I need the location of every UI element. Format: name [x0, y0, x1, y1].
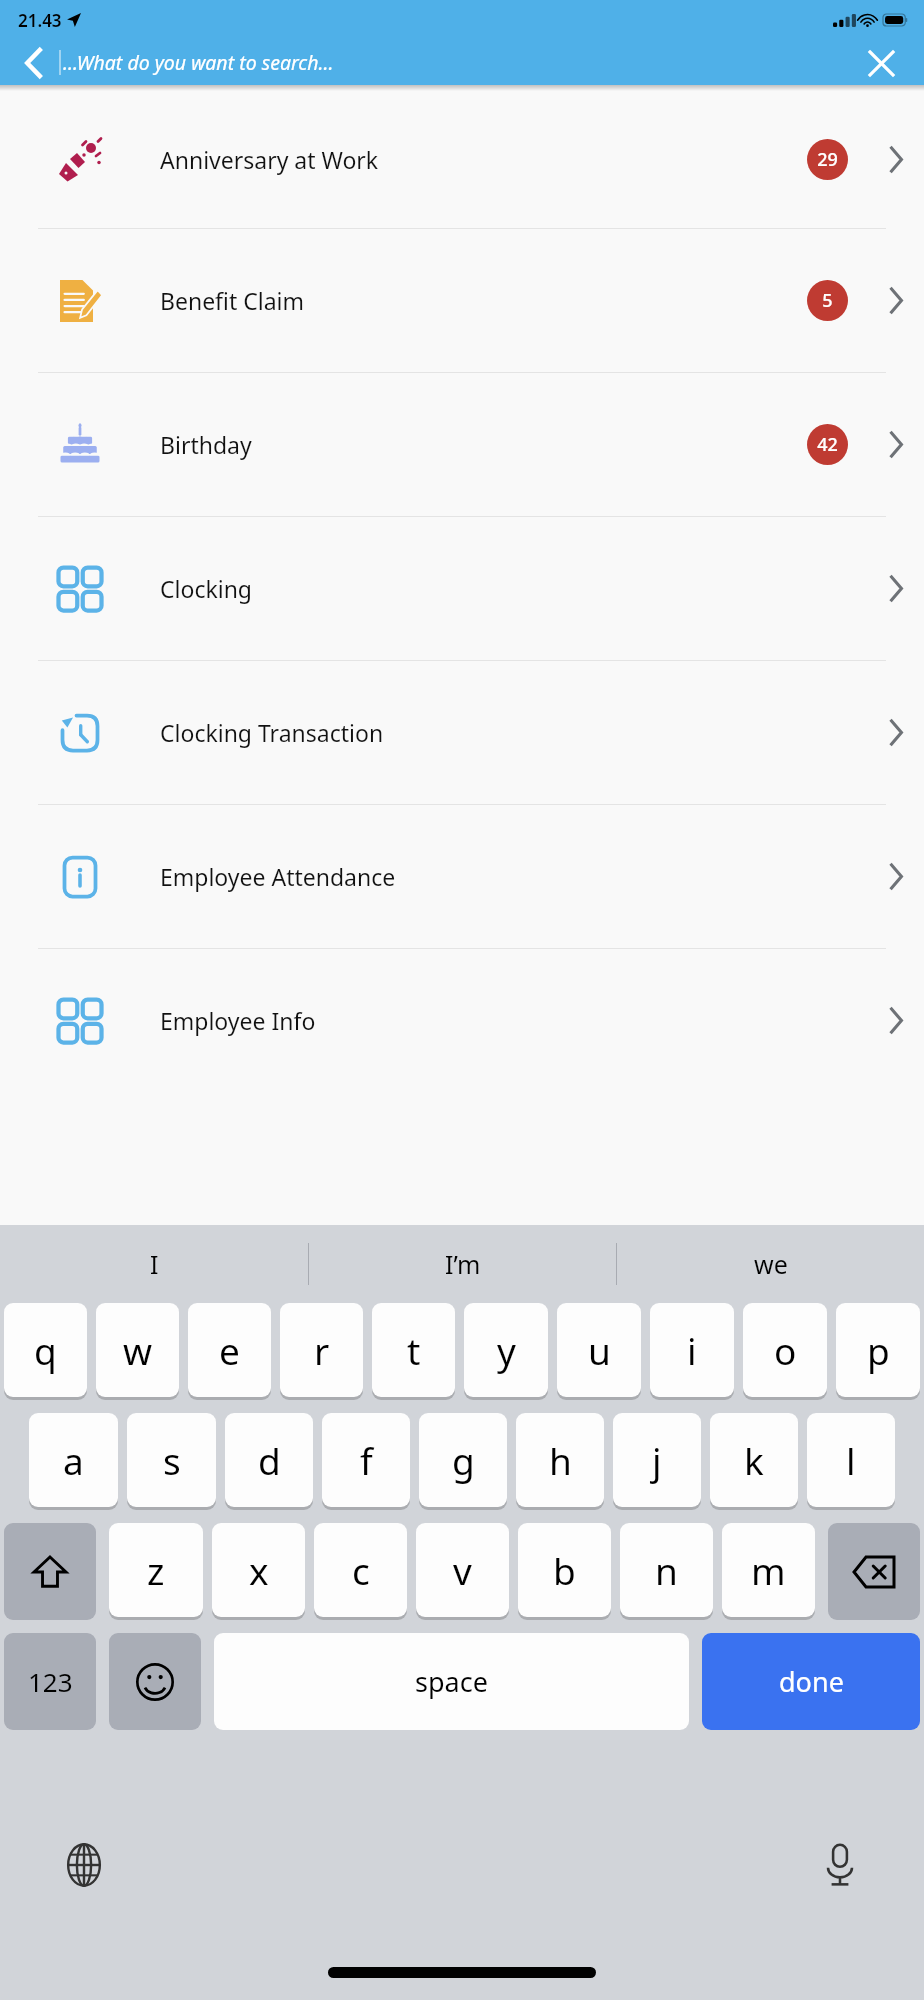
staticText: p — [867, 1325, 890, 1375]
button[interactable]: d — [225, 1413, 313, 1507]
staticText: e — [219, 1325, 240, 1375]
staticText: 29 — [817, 147, 838, 172]
staticText: a — [63, 1435, 84, 1485]
button[interactable]: Emoji — [109, 1633, 201, 1730]
staticText: j — [652, 1435, 662, 1485]
staticText: Employee Attendance — [160, 861, 396, 892]
button[interactable]: e — [188, 1303, 271, 1397]
button[interactable]: r — [280, 1303, 363, 1397]
button[interactable]: done — [702, 1633, 920, 1730]
button[interactable]: h — [516, 1413, 604, 1507]
staticText: d — [258, 1435, 281, 1485]
staticText: l — [846, 1435, 856, 1485]
staticText: o — [774, 1325, 797, 1375]
button[interactable]: Birthday — [0, 373, 924, 516]
staticText: 21.43 — [18, 9, 62, 32]
button[interactable]: t — [372, 1303, 455, 1397]
staticText: s — [163, 1435, 181, 1485]
staticText: k — [744, 1435, 764, 1485]
button[interactable]: s — [127, 1413, 216, 1507]
button[interactable]: Backspace — [828, 1523, 920, 1620]
staticText: v — [453, 1545, 472, 1595]
button[interactable]: f — [322, 1413, 410, 1507]
staticText: t — [407, 1325, 421, 1375]
staticText: r — [314, 1325, 330, 1375]
staticText: 42 — [817, 432, 838, 457]
staticText: n — [655, 1545, 678, 1595]
button[interactable]: o — [743, 1303, 827, 1397]
button[interactable]: x — [212, 1523, 305, 1617]
button[interactable]: Benefit Claim — [0, 229, 924, 372]
button[interactable]: Back — [10, 40, 56, 85]
button[interactable]: m — [722, 1523, 815, 1617]
staticText: 5 — [822, 288, 833, 313]
staticText: x — [249, 1545, 269, 1595]
button[interactable]: Shift — [4, 1523, 96, 1620]
staticText: z — [147, 1545, 165, 1595]
staticText: I — [150, 1247, 159, 1281]
button[interactable]: Anniversary at Work — [0, 91, 924, 228]
staticText: Clocking Transaction — [160, 717, 384, 748]
staticText: 123 — [28, 1664, 73, 1699]
button[interactable]: Clear search — [860, 42, 902, 84]
staticText: Birthday — [160, 429, 252, 460]
staticText: space — [415, 1663, 488, 1700]
button[interactable]: Clocking Transaction — [0, 661, 924, 804]
staticText: m — [751, 1545, 786, 1595]
button[interactable]: g — [419, 1413, 507, 1507]
button[interactable]: v — [416, 1523, 509, 1617]
staticText: y — [497, 1325, 516, 1375]
button[interactable]: w — [96, 1303, 179, 1397]
staticText: g — [452, 1435, 475, 1485]
button[interactable]: j — [613, 1413, 701, 1507]
button[interactable]: Change keyboard language — [56, 1837, 112, 1893]
staticText: h — [549, 1435, 572, 1485]
staticText: Employee Info — [160, 1005, 316, 1036]
button[interactable]: c — [314, 1523, 407, 1617]
button[interactable]: i — [650, 1303, 734, 1397]
button[interactable]: Employee Attendance — [0, 805, 924, 948]
staticText: b — [553, 1545, 576, 1595]
staticText: c — [352, 1545, 370, 1595]
staticText: Clocking — [160, 573, 253, 604]
button[interactable]: space — [214, 1633, 689, 1730]
staticText: u — [588, 1325, 611, 1375]
button[interactable]: z — [109, 1523, 203, 1617]
staticText: we — [754, 1247, 788, 1281]
button[interactable]: I — [0, 1225, 308, 1303]
staticText: Anniversary at Work — [160, 144, 379, 175]
button[interactable]: I’m — [309, 1225, 616, 1303]
button[interactable]: n — [620, 1523, 713, 1617]
button[interactable]: p — [836, 1303, 920, 1397]
staticText: i — [687, 1325, 697, 1375]
button[interactable]: Employee Info — [0, 949, 924, 1092]
button[interactable]: Voice input — [812, 1837, 868, 1893]
staticText: Benefit Claim — [160, 285, 305, 316]
button[interactable]: a — [29, 1413, 118, 1507]
button[interactable]: q — [4, 1303, 87, 1397]
staticText: f — [360, 1435, 373, 1485]
button[interactable]: b — [518, 1523, 611, 1617]
button[interactable]: Clocking — [0, 517, 924, 660]
button[interactable]: y — [464, 1303, 548, 1397]
button[interactable]: l — [807, 1413, 895, 1507]
staticText: q — [34, 1325, 57, 1375]
staticText: I’m — [445, 1247, 481, 1281]
button[interactable]: 123 — [4, 1633, 96, 1730]
staticText: ...What do you want to search... — [63, 49, 334, 76]
staticText: done — [779, 1663, 844, 1700]
button[interactable]: we — [617, 1225, 924, 1303]
button[interactable]: u — [557, 1303, 641, 1397]
button[interactable]: k — [710, 1413, 798, 1507]
staticText: w — [123, 1325, 153, 1375]
